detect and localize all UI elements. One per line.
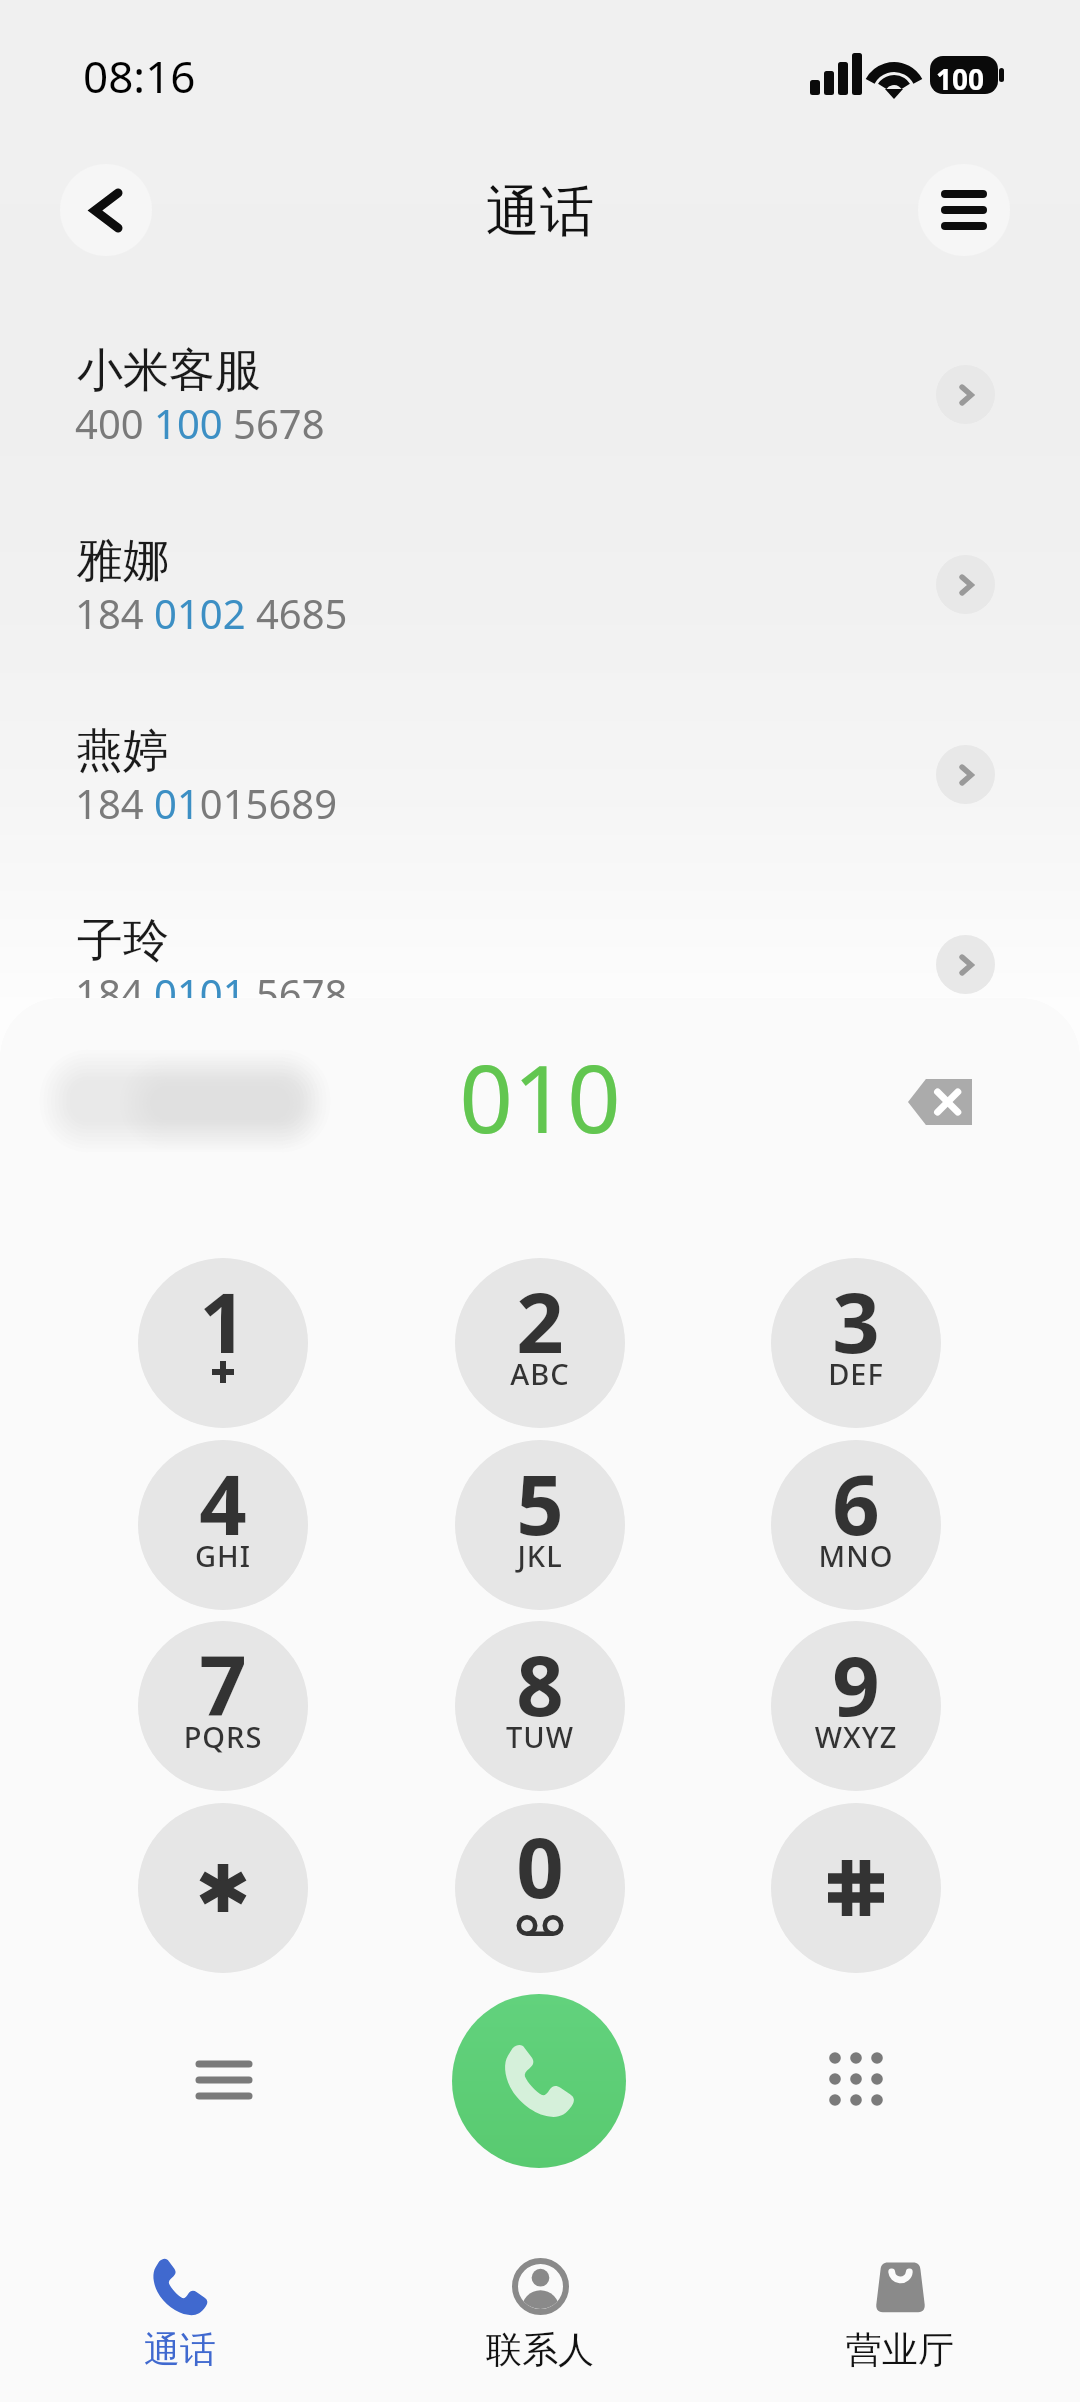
staticText: 1 <box>138 1264 308 1377</box>
button[interactable]: Key 7 <box>138 1621 308 1791</box>
button[interactable]: Key 8 <box>455 1621 625 1791</box>
staticText: GHI <box>138 1536 308 1575</box>
staticText: 184 0101 5678 <box>75 966 348 1020</box>
button[interactable]: 子玲 <box>0 870 1080 1060</box>
staticText: PQRS <box>138 1717 308 1756</box>
staticText: 3 <box>771 1264 941 1377</box>
button[interactable]: Call <box>452 1994 626 2168</box>
button[interactable]: Key 5 <box>455 1440 625 1610</box>
button[interactable]: Key 6 <box>771 1440 941 1610</box>
staticText: 通话 <box>0 178 1080 246</box>
staticText: 08:16 <box>83 46 196 106</box>
staticText: 9 <box>771 1627 941 1740</box>
staticText: 8 <box>455 1627 625 1740</box>
button[interactable]: Backspace <box>890 1060 990 1144</box>
button[interactable]: Back <box>60 164 152 256</box>
button[interactable]: Menu <box>918 164 1010 256</box>
staticText: 联系人 <box>360 2327 720 2372</box>
staticText: 子玲 <box>77 912 169 970</box>
staticText: 7 <box>138 1627 308 1740</box>
staticText: 400 100 5678 <box>75 396 325 450</box>
button[interactable]: 雅娜 <box>0 490 1080 680</box>
staticText: 6 <box>771 1446 941 1559</box>
button[interactable]: 营业厅 <box>720 2230 1080 2402</box>
button[interactable]: Key 0 <box>455 1803 625 1973</box>
staticText: MNO <box>771 1536 941 1575</box>
staticText: 通话 <box>0 2327 360 2372</box>
staticText: 5 <box>455 1446 625 1559</box>
button[interactable]: Key 4 <box>138 1440 308 1610</box>
staticText: 雅娜 <box>77 532 169 590</box>
button[interactable]: Key 9 <box>771 1621 941 1791</box>
button[interactable]: Key 1 <box>138 1258 308 1428</box>
staticText: 2 <box>455 1264 625 1377</box>
button[interactable]: Key 3 <box>771 1258 941 1428</box>
button[interactable]: 通话 <box>0 2230 360 2402</box>
button[interactable]: 小米客服 <box>0 300 1080 490</box>
staticText: 4 <box>138 1446 308 1559</box>
staticText: 营业厅 <box>720 2327 1080 2372</box>
staticText: 010 <box>0 1033 1080 1161</box>
staticText: 燕婷 <box>77 722 169 780</box>
button[interactable]: Keypad <box>806 2029 906 2129</box>
button[interactable]: 联系人 <box>360 2230 720 2402</box>
button[interactable]: 燕婷 <box>0 680 1080 870</box>
button[interactable]: Key * <box>138 1803 308 1973</box>
staticText: JKL <box>455 1536 625 1575</box>
staticText: ABC <box>455 1354 625 1393</box>
staticText: 184 0102 4685 <box>75 586 348 640</box>
staticText: TUW <box>455 1717 625 1756</box>
button[interactable]: Call log <box>174 2030 274 2130</box>
button[interactable]: Key 2 <box>455 1258 625 1428</box>
staticText: 184 01015689 <box>75 776 338 830</box>
button[interactable]: Key # <box>771 1803 941 1973</box>
staticText: WXYZ <box>771 1717 941 1756</box>
staticText: 小米客服 <box>77 342 261 400</box>
staticText: 0 <box>455 1809 625 1922</box>
staticText: DEF <box>771 1354 941 1393</box>
staticText: 100 <box>936 60 985 98</box>
